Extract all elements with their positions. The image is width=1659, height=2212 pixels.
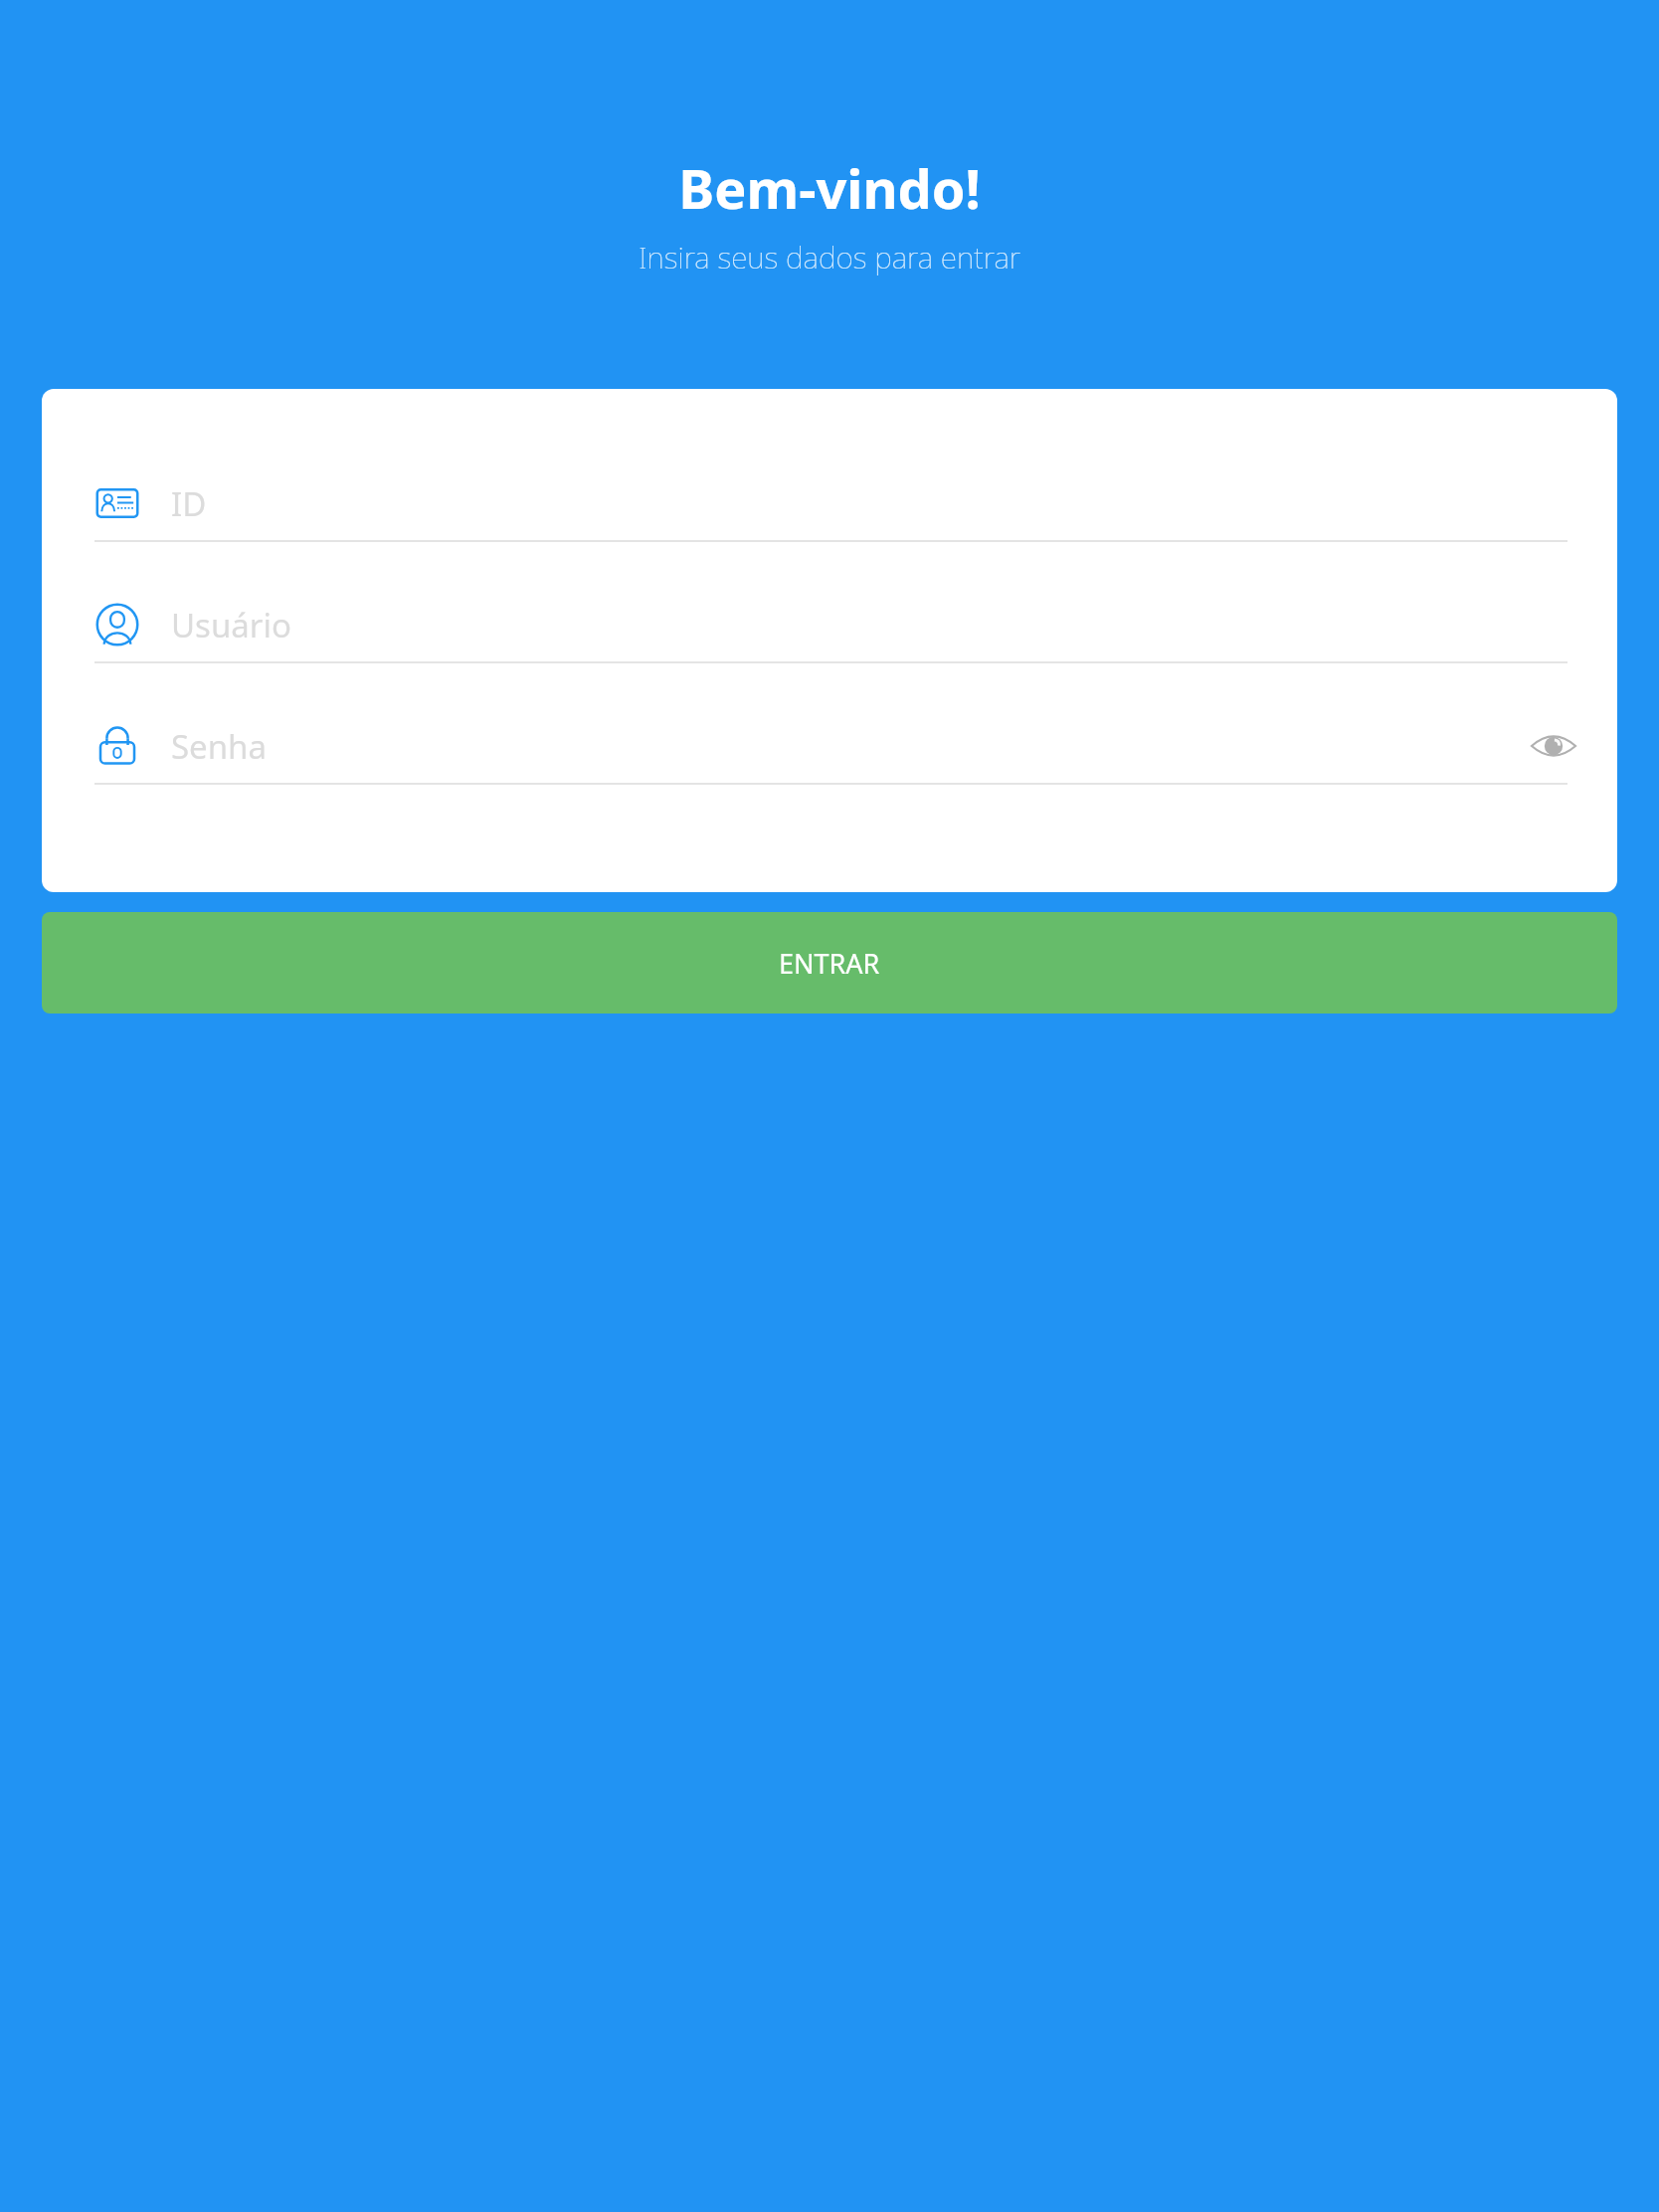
button[interactable]: Mostrar senha (1518, 710, 1589, 782)
staticText: ENTRAR (779, 945, 880, 982)
staticText: Usuário (171, 603, 291, 647)
staticText: Insira seus dados para entrar (0, 237, 1659, 277)
staticText: Senha (171, 724, 268, 769)
button[interactable]: ID (42, 466, 1617, 540)
staticText: Bem-vindo! (0, 151, 1659, 225)
staticText: ID (171, 481, 207, 526)
button[interactable]: Senha (42, 709, 1617, 783)
button[interactable]: Usuário (42, 588, 1617, 661)
button[interactable]: ENTRAR (42, 912, 1617, 1014)
